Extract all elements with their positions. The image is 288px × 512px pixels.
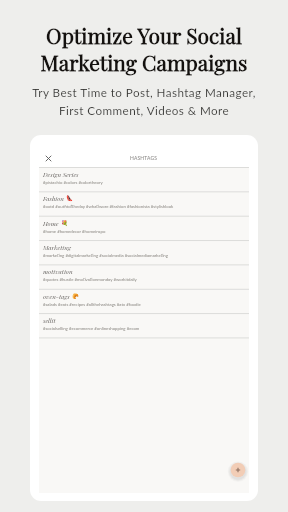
button[interactable]: Marketing (39, 240, 249, 264)
button[interactable]: Close (39, 149, 57, 167)
staticText: #quotes #hustle #motivationmonday #worki… (43, 277, 137, 282)
staticText: Fashion (43, 194, 64, 202)
button[interactable]: motivation (39, 264, 249, 288)
staticText: #salads #eats #recipes #allthehashtags #… (43, 302, 141, 307)
staticText: #socialselling #ecommerce #onlineshoppin… (43, 326, 140, 331)
staticText: #home #homedecor #homeinspo (43, 229, 106, 234)
staticText: #marketing #digitalmarketing #socialmedi… (43, 253, 168, 258)
staticText: sellit (43, 316, 56, 324)
staticText: Home (43, 219, 59, 227)
staticText: 👠 (66, 195, 73, 201)
staticText: oven-tags (43, 292, 70, 300)
button[interactable]: Add (228, 460, 248, 480)
staticText: Design Series (43, 170, 79, 178)
staticText: 💐 (61, 220, 68, 226)
staticText: 🥐 (72, 293, 79, 299)
staticText: #ootd #outfitoftheday #whatiwore #fashio… (43, 204, 174, 209)
staticText: Marketing (43, 243, 71, 251)
button[interactable]: oven-tags (39, 289, 249, 313)
staticText: Optimize Your Social Marketing Campaigns (0, 21, 288, 76)
staticText: motivation (43, 267, 73, 275)
staticText: #pistachio #colors #colortheory (43, 180, 103, 185)
staticText: Try Best Time to Post, Hashtag Manager, … (0, 85, 288, 117)
button[interactable]: Fashion (39, 191, 249, 215)
button[interactable]: Home (39, 216, 249, 240)
button[interactable]: sellit (39, 313, 249, 337)
button[interactable]: Design Series (39, 167, 249, 191)
staticText: HASHTAGS (130, 155, 158, 161)
